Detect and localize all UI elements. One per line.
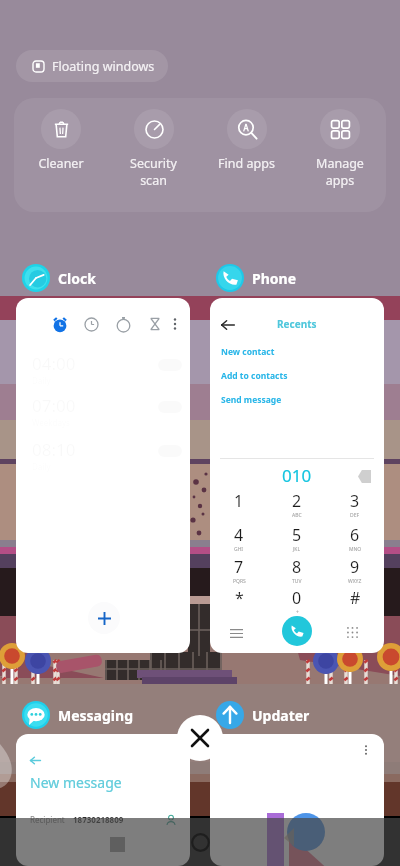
- staticText: WXYZ: [348, 578, 362, 585]
- button[interactable]: 2: [268, 490, 326, 522]
- button[interactable]: 8: [268, 556, 326, 588]
- button[interactable]: 5: [268, 524, 326, 556]
- button[interactable]: 1: [210, 490, 268, 522]
- button[interactable]: Keypad: [346, 626, 359, 639]
- staticText: ABC: [292, 512, 302, 519]
- staticText: Find apps: [218, 155, 275, 172]
- button[interactable]: 9: [326, 556, 384, 588]
- staticText: 7: [234, 556, 244, 578]
- staticText: 010: [282, 464, 312, 487]
- button[interactable]: Add alarm: [88, 602, 120, 634]
- staticText: 1: [234, 490, 244, 512]
- button[interactable]: 3: [326, 490, 384, 522]
- staticText: JKL: [293, 546, 301, 553]
- button[interactable]: Phone: [216, 264, 297, 292]
- button[interactable]: Find apps: [200, 98, 293, 172]
- button[interactable]: More options: [210, 734, 384, 866]
- staticText: Messaging: [58, 706, 133, 725]
- staticText: Phone: [252, 269, 297, 288]
- button[interactable]: Back: [210, 298, 384, 653]
- button[interactable]: 6: [326, 524, 384, 556]
- button[interactable]: Call log: [230, 627, 243, 640]
- staticText: PQRS: [233, 578, 246, 585]
- button[interactable]: More options: [360, 744, 372, 756]
- staticText: Updater: [252, 706, 310, 725]
- staticText: 6: [350, 524, 360, 546]
- button[interactable]: Manage apps: [293, 98, 386, 188]
- staticText: Manage apps: [316, 155, 364, 188]
- button[interactable]: Stopwatch: [148, 317, 162, 331]
- button[interactable]: Alarm: [16, 298, 190, 653]
- button[interactable]: Messaging: [22, 701, 133, 729]
- button[interactable]: Timer: [116, 317, 131, 332]
- button[interactable]: Back: [16, 734, 190, 866]
- button[interactable]: Back: [30, 755, 41, 766]
- staticText: Clock: [58, 269, 96, 288]
- button[interactable]: Back: [221, 318, 235, 332]
- staticText: +: [296, 609, 299, 616]
- button[interactable]: Cleaner: [14, 98, 107, 172]
- staticText: DEF: [350, 512, 360, 519]
- staticText: 9: [350, 556, 360, 578]
- staticText: 8: [292, 556, 302, 578]
- staticText: Send message: [221, 394, 282, 406]
- staticText: 2: [292, 490, 302, 512]
- staticText: Floating windows: [52, 58, 155, 75]
- staticText: Recents: [277, 317, 317, 331]
- button[interactable]: *: [210, 587, 268, 619]
- staticText: Add to contacts: [221, 370, 288, 382]
- button[interactable]: Home: [191, 833, 210, 852]
- button[interactable]: 7: [210, 556, 268, 588]
- button[interactable]: Backspace: [358, 470, 371, 483]
- staticText: 18730218809: [73, 814, 124, 825]
- staticText: New message: [30, 773, 122, 792]
- button[interactable]: Floating windows: [16, 50, 168, 82]
- button[interactable]: 0: [268, 587, 326, 619]
- staticText: 5: [292, 524, 302, 546]
- button[interactable]: #: [326, 587, 384, 619]
- staticText: 3: [350, 490, 360, 512]
- button[interactable]: Security scan: [107, 98, 200, 188]
- staticText: TUV: [292, 578, 302, 585]
- button[interactable]: New contact: [210, 342, 384, 362]
- button[interactable]: Updater: [216, 701, 310, 729]
- staticText: Cleaner: [38, 155, 84, 172]
- staticText: *: [235, 587, 244, 609]
- button[interactable]: More options: [168, 317, 182, 331]
- button[interactable]: Clock: [84, 317, 99, 332]
- button[interactable]: Clock: [22, 264, 96, 292]
- staticText: Recipient: [30, 814, 65, 825]
- button[interactable]: Add to contacts: [210, 366, 384, 386]
- button[interactable]: Alarm: [52, 317, 68, 333]
- staticText: 0: [292, 587, 302, 609]
- button[interactable]: Close all: [177, 715, 223, 761]
- staticText: #: [350, 587, 361, 609]
- staticText: 4: [234, 524, 244, 546]
- button[interactable]: 4: [210, 524, 268, 556]
- staticText: New contact: [221, 346, 275, 358]
- button[interactable]: Send message: [210, 390, 384, 410]
- staticText: Security scan: [130, 155, 177, 188]
- staticText: MNO: [349, 546, 362, 553]
- staticText: GHI: [234, 546, 244, 553]
- button[interactable]: Call: [282, 616, 312, 646]
